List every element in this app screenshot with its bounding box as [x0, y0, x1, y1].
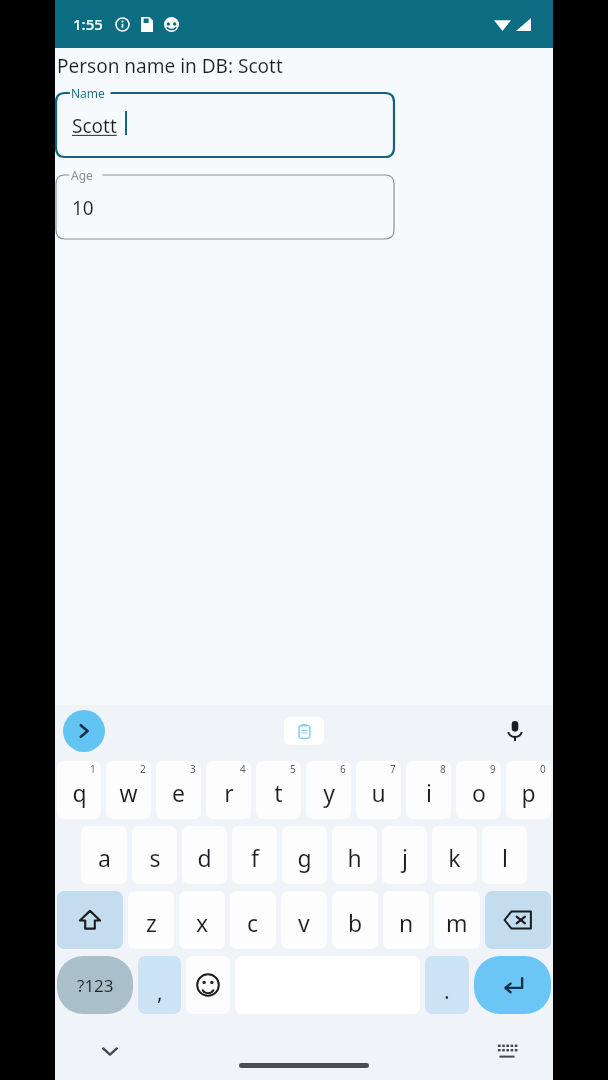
button[interactable]: b: [332, 891, 378, 949]
staticText: Scott: [72, 113, 117, 139]
staticText: p: [521, 777, 536, 808]
button[interactable]: k: [432, 826, 477, 884]
button[interactable]: z: [128, 891, 174, 949]
staticText: 6: [340, 762, 346, 776]
staticText: x: [196, 907, 209, 938]
button[interactable]: x: [179, 891, 225, 949]
button[interactable]: d: [182, 826, 227, 884]
staticText: 1:55: [73, 14, 103, 34]
button[interactable]: r: [206, 761, 251, 819]
staticText: 4: [240, 762, 246, 776]
button[interactable]: u: [356, 761, 401, 819]
staticText: r: [224, 777, 234, 808]
button[interactable]: h: [332, 826, 377, 884]
button[interactable]: Shift: [57, 891, 123, 949]
button[interactable]: c: [230, 891, 276, 949]
button[interactable]: s: [132, 826, 177, 884]
staticText: l: [502, 842, 508, 873]
staticText: a: [98, 842, 111, 873]
button[interactable]: f: [232, 826, 277, 884]
staticText: o: [472, 777, 486, 808]
button[interactable]: Clipboard: [284, 717, 324, 745]
staticText: 10: [72, 195, 94, 221]
button[interactable]: g: [282, 826, 327, 884]
staticText: 0: [540, 762, 546, 776]
staticText: f: [251, 842, 259, 873]
staticText: i: [426, 777, 432, 808]
staticText: 9: [490, 762, 496, 776]
button[interactable]: .: [425, 956, 469, 1014]
staticText: w: [119, 777, 138, 808]
staticText: d: [197, 842, 212, 873]
button[interactable]: Emoji: [186, 956, 230, 1014]
button[interactable]: Backspace: [485, 891, 551, 949]
staticText: h: [347, 842, 362, 873]
button[interactable]: p: [506, 761, 551, 819]
button[interactable]: o: [456, 761, 501, 819]
staticText: t: [274, 777, 283, 808]
button[interactable]: ?123: [57, 956, 133, 1014]
button[interactable]: i: [406, 761, 451, 819]
button[interactable]: y: [306, 761, 351, 819]
button[interactable]: t: [256, 761, 301, 819]
staticText: 8: [440, 762, 446, 776]
button[interactable]: Name: [56, 85, 394, 157]
button[interactable]: Age: [56, 167, 394, 239]
button[interactable]: Next suggestions: [63, 710, 105, 752]
staticText: n: [399, 907, 414, 938]
staticText: 5: [290, 762, 296, 776]
button[interactable]: a: [81, 826, 127, 884]
button[interactable]: Voice input: [497, 713, 533, 749]
staticText: s: [149, 842, 161, 873]
staticText: e: [172, 777, 185, 808]
staticText: ,: [157, 978, 163, 1007]
staticText: v: [298, 907, 310, 938]
button[interactable]: Switch keyboard: [491, 1035, 523, 1067]
button[interactable]: l: [482, 826, 527, 884]
staticText: y: [323, 777, 335, 808]
staticText: u: [371, 777, 386, 808]
staticText: ?123: [77, 974, 114, 997]
staticText: b: [348, 907, 363, 938]
button[interactable]: q: [57, 761, 101, 819]
staticText: 7: [390, 762, 396, 776]
button[interactable]: e: [156, 761, 201, 819]
staticText: 3: [190, 762, 196, 776]
staticText: j: [402, 842, 408, 873]
staticText: Age: [71, 167, 93, 183]
button[interactable]: n: [383, 891, 429, 949]
staticText: .: [444, 977, 450, 1006]
staticText: Name: [71, 85, 105, 101]
button[interactable]: v: [281, 891, 327, 949]
button[interactable]: j: [382, 826, 427, 884]
button[interactable]: Enter: [474, 956, 551, 1014]
staticText: q: [72, 777, 87, 808]
staticText: z: [146, 907, 157, 938]
staticText: m: [446, 907, 468, 938]
staticText: 2: [140, 762, 146, 776]
staticText: k: [448, 842, 461, 873]
button[interactable]: w: [106, 761, 151, 819]
staticText: Person name in DB: Scott: [57, 53, 283, 79]
staticText: 1: [90, 762, 96, 776]
staticText: g: [297, 842, 312, 873]
button[interactable]: m: [434, 891, 480, 949]
staticText: c: [247, 907, 259, 938]
button[interactable]: ,: [138, 956, 181, 1014]
button[interactable]: Hide keyboard: [93, 1034, 127, 1068]
